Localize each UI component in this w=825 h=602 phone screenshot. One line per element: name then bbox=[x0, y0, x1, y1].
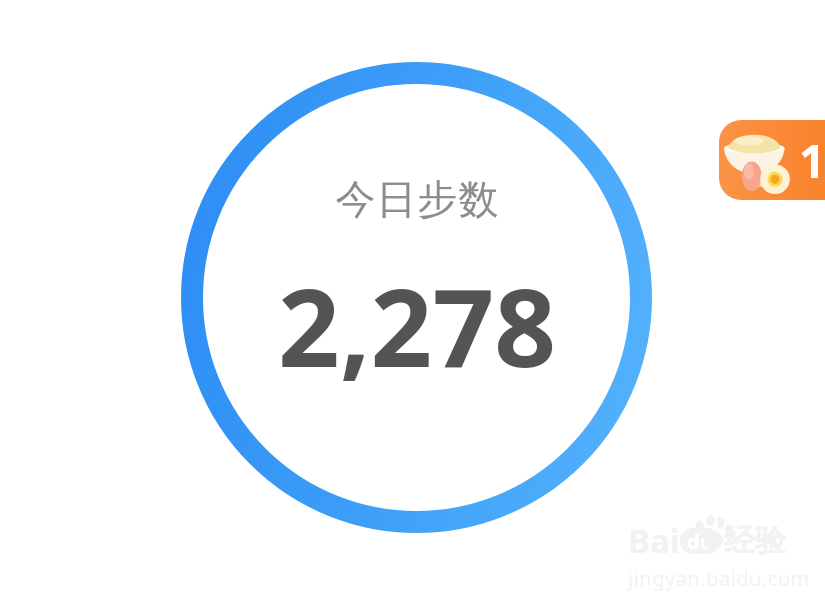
staticText: du bbox=[687, 528, 713, 554]
button[interactable]: 饮食提醒 bbox=[719, 120, 825, 200]
button[interactable]: 今日步数 2,278 bbox=[181, 62, 652, 533]
staticText: jingyan.baidu.com bbox=[628, 565, 810, 592]
staticText: Bai bbox=[628, 518, 680, 563]
staticText: 2,278 bbox=[278, 252, 556, 399]
staticText: 今日步数 bbox=[335, 174, 499, 224]
staticText: 1: bbox=[799, 129, 825, 192]
staticText: 经验 bbox=[724, 521, 786, 560]
